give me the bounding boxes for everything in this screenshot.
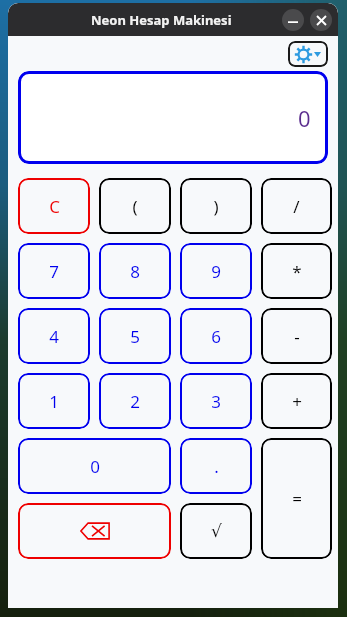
button[interactable]: Minimize	[282, 9, 304, 31]
button[interactable]: (	[99, 178, 171, 234]
staticText: 2	[130, 390, 140, 413]
button[interactable]: 3	[180, 373, 252, 429]
button[interactable]: .	[180, 438, 252, 494]
button[interactable]: -	[261, 308, 332, 364]
button[interactable]: )	[180, 178, 252, 234]
button[interactable]: C	[18, 178, 90, 234]
button[interactable]: Backspace	[18, 503, 171, 559]
button[interactable]: √	[180, 503, 252, 559]
button[interactable]: 8	[99, 243, 171, 299]
button[interactable]: *	[261, 243, 332, 299]
button[interactable]: 1	[18, 373, 90, 429]
staticText: 1	[49, 390, 59, 413]
staticText: 4	[49, 325, 59, 348]
staticText: 7	[49, 260, 59, 283]
staticText: 0	[90, 455, 100, 478]
staticText: (	[132, 195, 138, 218]
button[interactable]: 9	[180, 243, 252, 299]
button[interactable]: 0	[18, 438, 171, 494]
staticText: 0	[298, 103, 311, 133]
staticText: )	[213, 195, 219, 218]
staticText: 3	[211, 390, 221, 413]
staticText: 8	[130, 260, 140, 283]
staticText: .	[214, 455, 219, 478]
staticText: C	[49, 195, 60, 218]
button[interactable]: 0	[18, 71, 328, 164]
button[interactable]: =	[261, 438, 332, 559]
button[interactable]: Close	[310, 9, 332, 31]
staticText: +	[292, 390, 302, 413]
staticText: -	[294, 325, 300, 348]
staticText: Neon Hesap Makinesi	[91, 11, 232, 29]
staticText: 5	[130, 325, 140, 348]
staticText: 9	[211, 260, 221, 283]
button[interactable]: Settings	[288, 41, 328, 67]
button[interactable]: +	[261, 373, 332, 429]
button[interactable]: 7	[18, 243, 90, 299]
button[interactable]: 4	[18, 308, 90, 364]
button[interactable]: 2	[99, 373, 171, 429]
staticText: /	[293, 195, 300, 218]
button[interactable]: 5	[99, 308, 171, 364]
staticText: *	[292, 260, 302, 283]
button[interactable]: 6	[180, 308, 252, 364]
staticText: √	[211, 521, 222, 541]
staticText: 6	[211, 325, 221, 348]
staticText: =	[292, 487, 302, 510]
button[interactable]: /	[261, 178, 332, 234]
